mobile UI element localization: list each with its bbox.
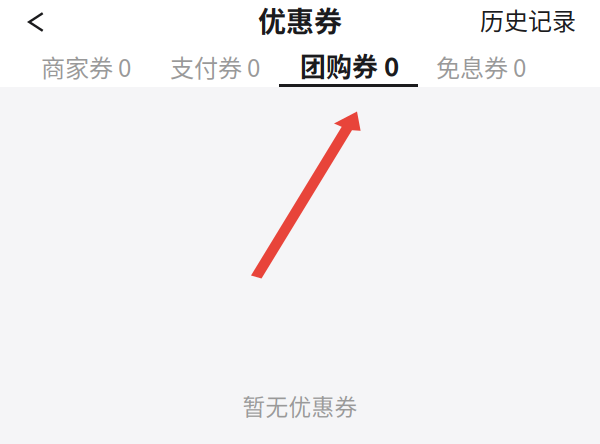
staticText: 暂无优惠券 xyxy=(242,389,357,422)
button[interactable]: 支付券 0 xyxy=(150,40,279,87)
staticText: 历史记录 xyxy=(480,2,576,37)
staticText: 团购券 0 xyxy=(300,46,399,84)
button[interactable]: 团购券 0 xyxy=(279,40,418,87)
button[interactable]: Back xyxy=(0,0,56,41)
button[interactable]: 免息券 0 xyxy=(418,40,545,87)
staticText: 免息券 0 xyxy=(436,49,526,84)
staticText: 商家券 0 xyxy=(41,49,131,84)
button[interactable]: 历史记录 xyxy=(468,0,600,47)
staticText: 优惠券 xyxy=(258,0,342,40)
button[interactable]: 商家券 0 xyxy=(21,40,150,87)
staticText: 支付券 0 xyxy=(170,49,260,84)
